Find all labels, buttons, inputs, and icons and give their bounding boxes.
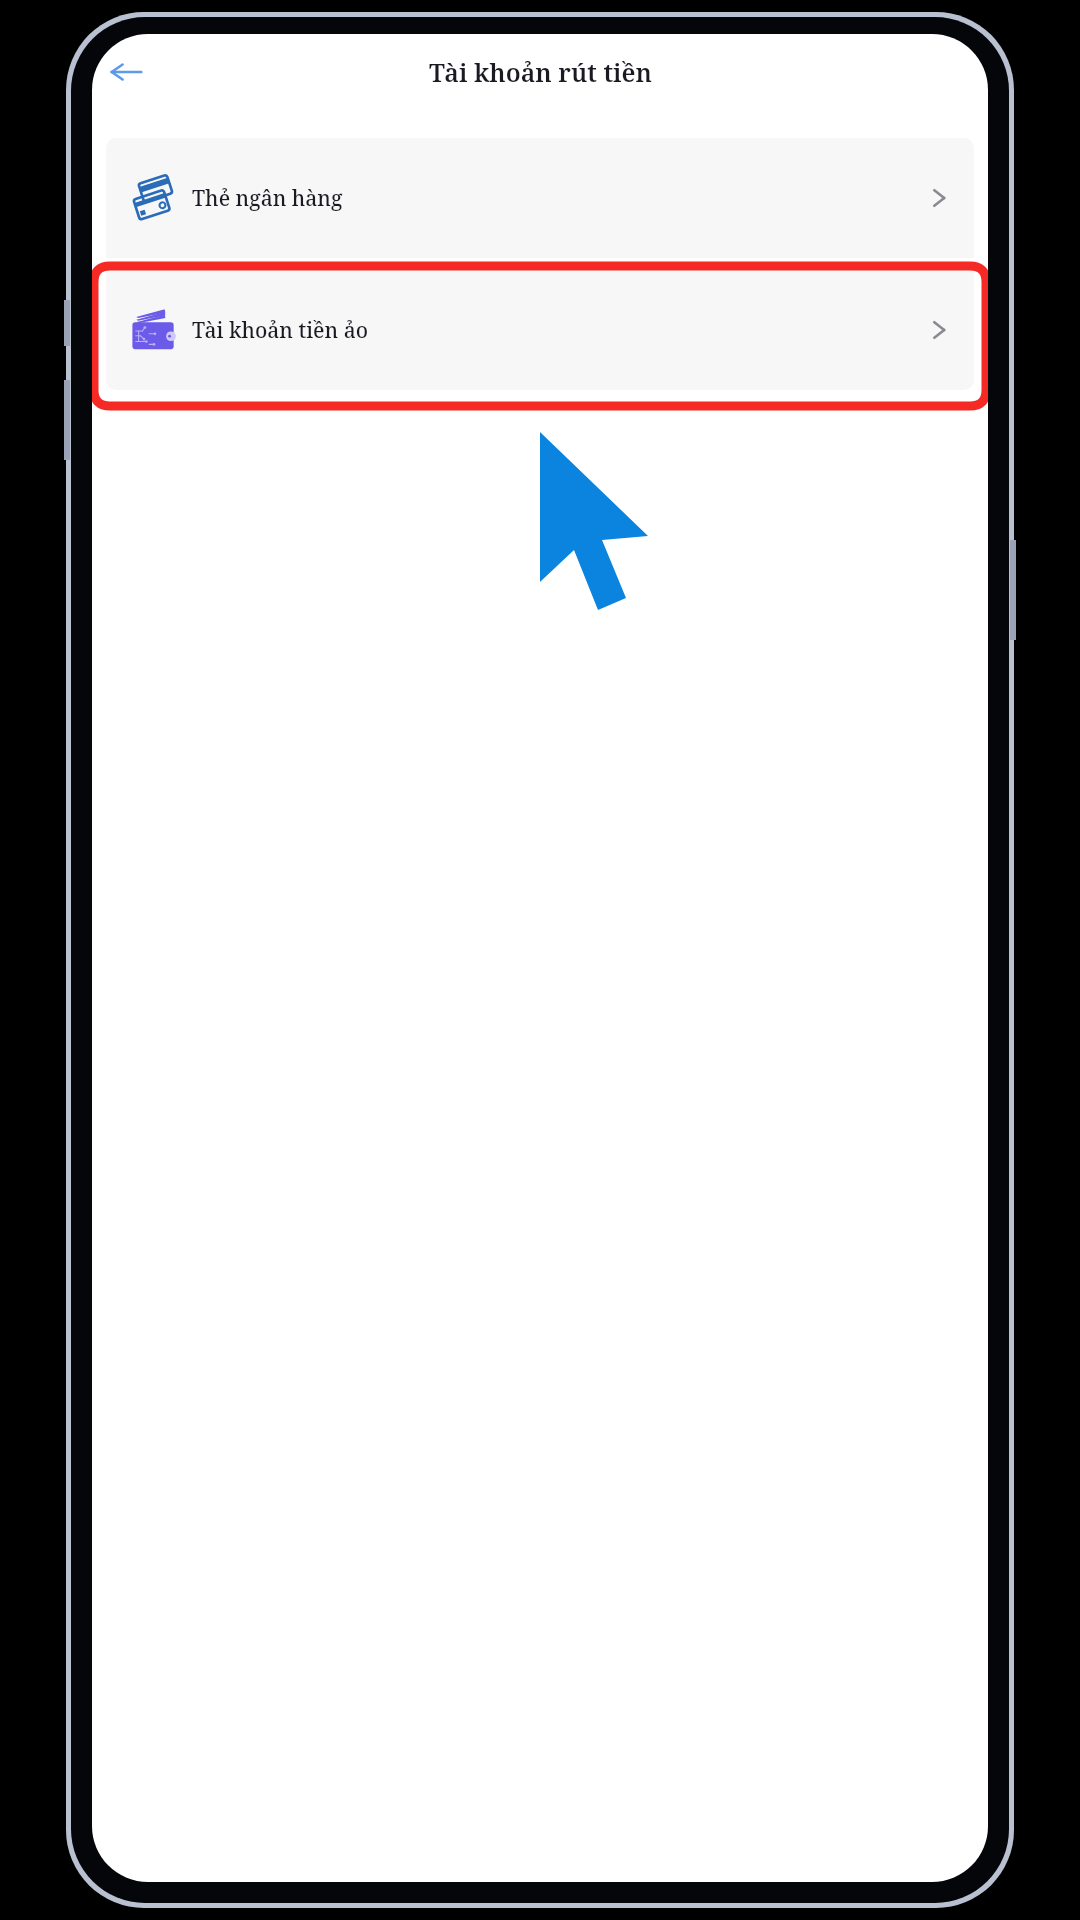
button[interactable]: Thẻ ngân hàng <box>106 138 974 258</box>
button[interactable]: Tài khoản tiền ảo <box>106 270 974 390</box>
other: Open <box>926 185 952 211</box>
staticText: Tài khoản tiền ảo <box>192 316 369 345</box>
staticText: Tài khoản rút tiền <box>429 55 652 89</box>
button[interactable]: Back <box>98 44 154 100</box>
staticText: Thẻ ngân hàng <box>192 184 343 213</box>
other: Open <box>926 317 952 343</box>
